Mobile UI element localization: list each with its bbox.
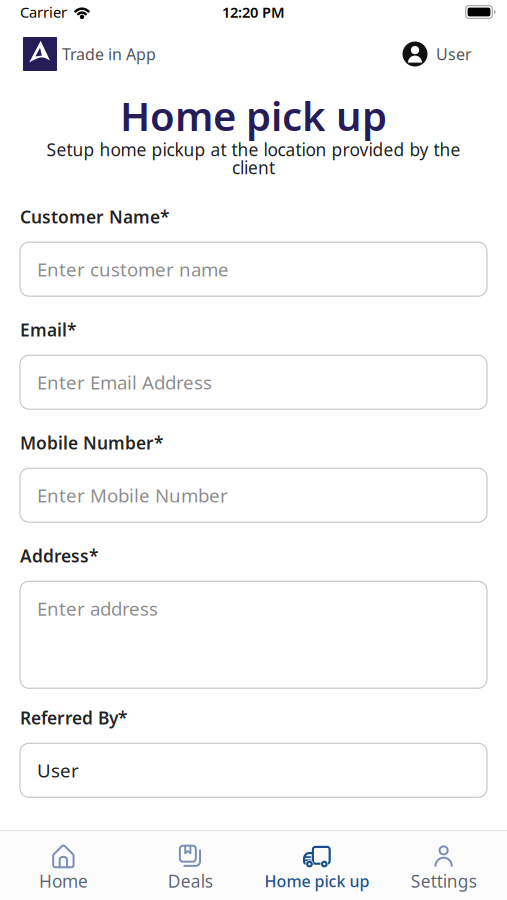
staticText: Settings (411, 869, 477, 892)
textField[interactable]: Enter address (20, 581, 487, 688)
staticText: Referred By* (20, 706, 127, 729)
button[interactable]: Home (0, 831, 127, 900)
textField[interactable]: User (20, 743, 487, 797)
staticText: Home pick up (264, 870, 369, 892)
button[interactable]: User (402, 41, 472, 67)
staticText: Enter Mobile Number (37, 483, 228, 508)
textField[interactable]: Enter customer name (20, 242, 487, 296)
staticText: Home (39, 869, 88, 892)
staticText: Carrier (20, 2, 67, 22)
staticText: Home pick up (120, 89, 387, 142)
staticText: User (436, 43, 472, 65)
staticText: Mobile Number* (20, 431, 163, 454)
textField[interactable]: Enter Email Address (20, 355, 487, 409)
staticText: Email* (20, 318, 76, 341)
staticText: Enter Email Address (37, 370, 212, 395)
button[interactable]: Home pick up (253, 831, 380, 900)
staticText: Address* (20, 544, 98, 567)
staticText: client (232, 156, 275, 179)
button[interactable]: Settings (380, 831, 507, 900)
textField[interactable]: Enter Mobile Number (20, 468, 487, 522)
staticText: Enter address (37, 596, 158, 621)
staticText: User (37, 758, 79, 783)
button[interactable]: Deals (127, 831, 254, 900)
staticText: Customer Name* (20, 205, 169, 228)
staticText: Deals (168, 869, 213, 892)
staticText: 12:20 PM (222, 2, 285, 22)
staticText: Trade in App (62, 43, 156, 65)
staticText: Setup home pickup at the location provid… (46, 138, 460, 161)
staticText: Enter customer name (37, 257, 229, 282)
